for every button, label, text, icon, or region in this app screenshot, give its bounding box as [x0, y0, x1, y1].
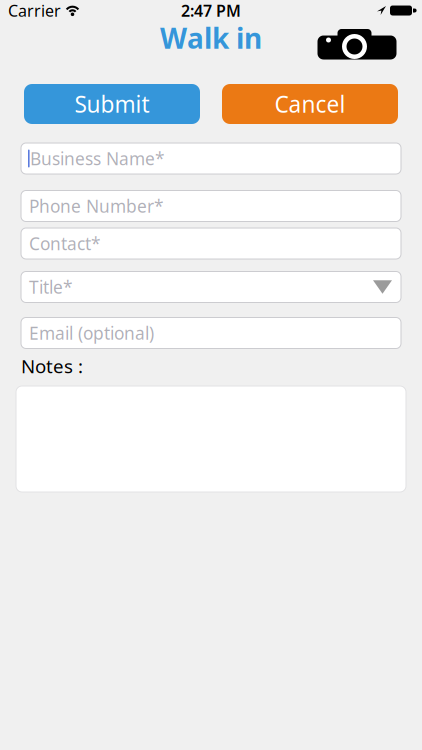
staticText: Business Name*: [30, 147, 165, 170]
staticText: Phone Number*: [29, 194, 164, 217]
button[interactable]: Take Photo: [317, 28, 397, 60]
button[interactable]: Submit: [24, 84, 200, 124]
staticText: Submit: [74, 89, 149, 119]
button[interactable]: Title*: [21, 271, 401, 302]
button[interactable]: Cancel: [222, 84, 398, 124]
staticText: Carrier: [8, 0, 61, 21]
staticText: Title*: [29, 275, 73, 298]
staticText: Notes :: [21, 354, 83, 378]
staticText: Cancel: [274, 89, 345, 119]
staticText: Walk in: [160, 19, 262, 57]
staticText: Contact*: [29, 232, 101, 255]
staticText: Email (optional): [29, 321, 154, 344]
staticText: 2:47 PM: [181, 0, 241, 21]
